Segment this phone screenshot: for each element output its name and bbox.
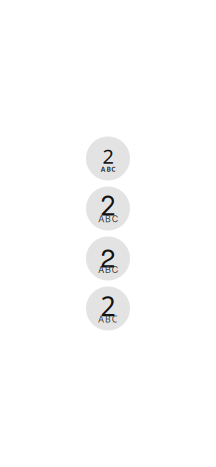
staticText: 2 — [100, 190, 116, 222]
staticText: ABC — [98, 313, 118, 325]
staticText: 2 — [100, 288, 115, 324]
staticText: ABC — [101, 165, 115, 174]
staticText: 2 — [100, 237, 115, 275]
staticText: 2 — [102, 143, 113, 169]
staticText: ABC — [98, 263, 118, 275]
staticText: ABC — [98, 214, 118, 224]
